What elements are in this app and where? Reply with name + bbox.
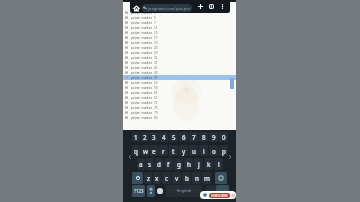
staticText: 6 [182, 133, 186, 141]
button[interactable]: g [174, 158, 183, 170]
staticText: English [177, 188, 192, 194]
staticText: o [212, 147, 216, 155]
staticText: s [148, 160, 152, 168]
button[interactable]: c [162, 172, 171, 184]
button[interactable]: 3 [150, 132, 158, 142]
button[interactable]: r [159, 145, 168, 156]
staticText: z [147, 174, 150, 182]
staticText: c [165, 174, 169, 182]
staticText: prime number 43 [131, 71, 158, 75]
button[interactable]: Backspace [215, 172, 227, 184]
staticText: 2 [143, 133, 147, 141]
staticText: 7 [192, 133, 196, 141]
staticText: SUBSCRIBE [211, 194, 228, 198]
button[interactable]: 1 [132, 132, 140, 142]
button[interactable]: x [153, 172, 161, 184]
staticText: prime number 73 [131, 106, 158, 110]
button[interactable]: f [164, 158, 173, 170]
button[interactable]: v [172, 172, 181, 184]
button[interactable]: p [219, 145, 228, 156]
button[interactable]: m [202, 172, 211, 184]
button[interactable]: b [182, 172, 191, 184]
staticText: f [167, 160, 170, 168]
button[interactable]: n [192, 172, 201, 184]
button[interactable]: j [194, 158, 203, 170]
staticText: 1 [134, 133, 138, 141]
staticText: prime number 13 [131, 31, 158, 35]
staticText: prime number 61 [131, 91, 158, 95]
staticText: d [157, 160, 161, 168]
button[interactable]: Home [132, 4, 140, 12]
staticText: j [198, 160, 200, 168]
staticText: prime number 41 [131, 66, 158, 70]
staticText: prime number 31 [131, 56, 158, 60]
button[interactable]: SUBSCRIBE [200, 191, 236, 199]
button[interactable]: l [214, 158, 223, 170]
button[interactable]: a [137, 158, 145, 170]
staticText: 5 [172, 133, 176, 141]
staticText: prime number 53 [131, 81, 158, 85]
button[interactable]: h [184, 158, 193, 170]
button[interactable]: Period [206, 185, 216, 197]
button[interactable]: 7 [189, 132, 198, 142]
button[interactable]: More options [219, 3, 226, 10]
staticText: 0 [222, 133, 226, 141]
button[interactable]: o [209, 145, 218, 156]
button[interactable]: e [150, 145, 158, 156]
button[interactable]: w [141, 145, 149, 156]
staticText: prime number 29 [131, 51, 158, 55]
staticText: 8 [202, 133, 206, 141]
staticText: n [195, 174, 199, 182]
staticText: t [172, 147, 175, 155]
button[interactable]: k [204, 158, 213, 170]
button[interactable]: y [179, 145, 188, 156]
staticText: e [152, 147, 156, 155]
button[interactable]: 9 [209, 132, 218, 142]
staticText: ?123 [134, 188, 144, 194]
staticText: prime number 5 [131, 16, 156, 20]
staticText: 3 [152, 133, 156, 141]
button[interactable]: Tabs [208, 3, 215, 10]
button[interactable]: 0 [219, 132, 228, 142]
staticText: 4 [162, 133, 166, 141]
staticText: prime number 71 [131, 101, 158, 105]
button[interactable]: 5 [169, 132, 178, 142]
button[interactable]: Voice input [156, 185, 164, 197]
button[interactable]: New tab [197, 3, 204, 10]
button[interactable]: i [199, 145, 208, 156]
staticText: m [204, 174, 210, 182]
button[interactable]: Enter [216, 185, 229, 197]
staticText: l [218, 160, 220, 168]
staticText: prime number 47 [131, 76, 158, 80]
button[interactable]: d [155, 158, 163, 170]
staticText: p [222, 147, 226, 155]
staticText: v [175, 174, 179, 182]
button[interactable]: z [144, 172, 152, 184]
button[interactable]: t [169, 145, 178, 156]
button[interactable]: 8 [199, 132, 208, 142]
button[interactable]: 4 [159, 132, 168, 142]
staticText: prime number 7 [131, 21, 156, 25]
staticText: y [182, 147, 186, 155]
button[interactable]: English [166, 185, 202, 197]
button[interactable]: q [132, 145, 140, 156]
staticText: programiz.com/java-pro [148, 6, 190, 11]
button[interactable]: ?123 [132, 185, 145, 197]
button[interactable]: 2 [141, 132, 149, 142]
button[interactable]: Symbols [147, 185, 155, 197]
staticText: prime number 83 [131, 116, 158, 120]
button[interactable]: programiz.com/java-pro [142, 4, 192, 12]
button[interactable]: 6 [179, 132, 188, 142]
staticText: u [192, 147, 196, 155]
button[interactable]: u [189, 145, 198, 156]
button[interactable]: s [146, 158, 154, 170]
button[interactable]: Shift [132, 172, 143, 184]
staticText: prime number 59 [131, 86, 158, 90]
staticText: prime number 79 [131, 111, 158, 115]
staticText: prime number 23 [131, 46, 158, 50]
staticText: w [143, 147, 148, 155]
staticText: prime number 19 [131, 41, 158, 45]
staticText: k [207, 160, 211, 168]
staticText: prime number 37 [131, 61, 158, 65]
staticText: x [155, 174, 159, 182]
